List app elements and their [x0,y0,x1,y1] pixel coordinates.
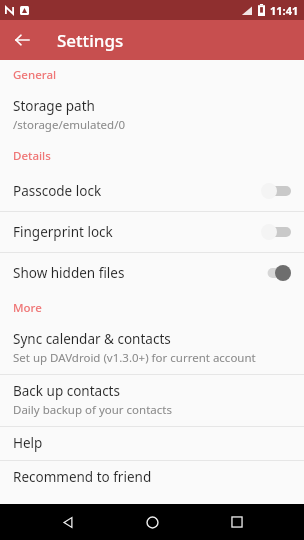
staticText: Set up DAVdroid (v1.3.0+) for current ac… [13,350,256,366]
button[interactable]: Recent apps [220,505,254,539]
button[interactable]: Home [135,505,169,539]
button[interactable]: Storage path [0,90,304,141]
staticText: /storage/emulated/0 [13,117,126,133]
staticText: Daily backup of your contacts [13,402,172,418]
staticText: Passcode lock [13,182,102,200]
button[interactable]: Fingerprint lock [0,212,304,252]
staticText: Settings [57,29,124,52]
staticText: Details [13,148,51,164]
staticText: Storage path [13,97,95,115]
staticText: Recommend to friend [13,468,152,486]
staticText: 11:41 [270,3,299,18]
staticText: Back up contacts [13,382,120,400]
staticText: More [13,300,42,316]
button[interactable]: Back [51,505,85,539]
button[interactable]: Show hidden files [0,253,304,293]
button[interactable]: Sync calendar & contacts [0,323,304,374]
button[interactable]: Back up contacts [0,375,304,426]
staticText: Sync calendar & contacts [13,330,171,348]
button[interactable]: Passcode lock [0,171,304,211]
button[interactable]: Help [0,427,304,460]
button[interactable]: Back [8,26,36,54]
button[interactable]: Recommend to friend [0,461,304,494]
staticText: Fingerprint lock [13,223,113,241]
staticText: Help [13,434,43,452]
staticText: Show hidden files [13,264,125,282]
staticText: General [13,67,57,83]
